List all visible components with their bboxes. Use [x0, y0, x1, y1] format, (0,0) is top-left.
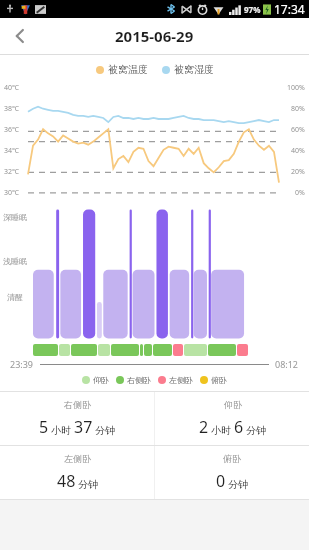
staticText: 0%: [295, 188, 305, 198]
staticText: 被窝温度: [108, 63, 148, 76]
button[interactable]: Back: [0, 18, 40, 54]
button[interactable]: 仰卧: [155, 392, 309, 445]
staticText: 20%: [291, 167, 305, 177]
staticText: 48: [57, 470, 76, 492]
staticText: 2: [199, 416, 209, 438]
staticText: 17:34: [274, 1, 305, 17]
staticText: 左侧卧: [169, 375, 193, 385]
staticText: 深睡眠: [3, 212, 27, 222]
staticText: 100%: [287, 83, 305, 93]
staticText: 清醒: [7, 292, 23, 302]
staticText: 仰卧: [93, 375, 109, 385]
button[interactable]: 俯卧: [155, 446, 309, 499]
staticText: 38℃: [4, 104, 19, 114]
staticText: 30℃: [4, 188, 19, 198]
staticText: 被窝湿度: [174, 63, 214, 76]
staticText: 40%: [291, 146, 305, 156]
staticText: 23:39: [10, 358, 34, 370]
staticText: 浅睡眠: [3, 256, 27, 266]
button[interactable]: 右侧卧: [0, 392, 154, 445]
staticText: 右侧卧: [127, 375, 151, 385]
staticText: 5: [39, 416, 49, 438]
staticText: 37: [74, 416, 93, 438]
staticText: 32℃: [4, 167, 19, 177]
staticText: 分钟: [228, 478, 248, 491]
staticText: 小时: [211, 424, 231, 437]
staticText: 小时: [51, 424, 71, 437]
staticText: 34℃: [4, 146, 19, 156]
staticText: 36℃: [4, 125, 19, 135]
staticText: 97%: [244, 4, 261, 15]
staticText: 分钟: [246, 424, 266, 437]
staticText: 俯卧: [223, 453, 241, 464]
staticText: 俯卧: [211, 375, 227, 385]
staticText: 0: [216, 470, 226, 492]
staticText: 分钟: [95, 424, 115, 437]
staticText: 仰卧: [224, 399, 242, 410]
staticText: 08:12: [275, 358, 299, 370]
staticText: 左侧卧: [64, 453, 91, 464]
staticText: 6: [234, 416, 244, 438]
staticText: 80%: [291, 104, 305, 114]
button[interactable]: 左侧卧: [0, 446, 154, 499]
staticText: 右侧卧: [64, 399, 91, 410]
staticText: 分钟: [78, 478, 98, 491]
staticText: 2015-06-29: [115, 26, 194, 46]
staticText: 40℃: [4, 83, 19, 93]
staticText: 60%: [291, 125, 305, 135]
